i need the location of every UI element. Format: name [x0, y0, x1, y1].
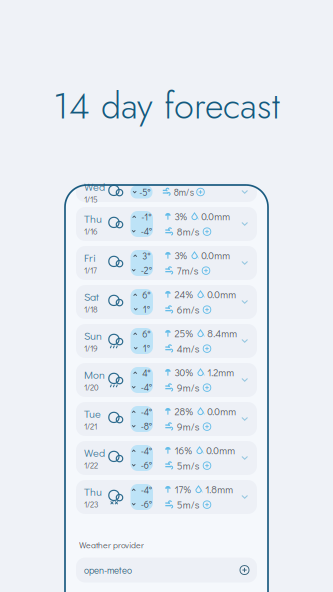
staticText: -4° — [141, 381, 152, 393]
button[interactable]: Thu — [76, 207, 257, 241]
staticText: 0.0mm — [201, 210, 230, 223]
staticText: 16% — [174, 444, 191, 457]
staticText: 4° — [142, 367, 150, 379]
staticText: Weather provider — [79, 539, 144, 550]
staticText: -4° — [141, 406, 152, 418]
staticText: -6° — [141, 498, 152, 510]
staticText: 0.0mm — [201, 249, 230, 262]
button[interactable]: Thu — [76, 480, 257, 514]
staticText: open-meteo — [84, 564, 132, 576]
staticText: 1° — [143, 303, 150, 315]
staticText: 17% — [174, 483, 190, 496]
staticText: 1/20 — [84, 382, 99, 392]
button[interactable]: Fri — [76, 246, 257, 280]
staticText: 4m/s — [177, 342, 200, 355]
staticText: Thu — [84, 484, 102, 499]
button[interactable]: Tue — [76, 402, 257, 436]
staticText: Sun — [84, 328, 102, 343]
staticText: Wed — [84, 179, 105, 194]
staticText: 24% — [174, 288, 192, 301]
button[interactable]: Sun — [76, 324, 257, 358]
staticText: 3% — [174, 210, 186, 223]
button[interactable]: Sat — [76, 285, 257, 319]
staticText: 8m/s — [174, 186, 194, 198]
staticText: 14 day forecast — [53, 80, 280, 132]
staticText: 1/19 — [84, 343, 98, 353]
staticText: 1/22 — [84, 460, 98, 470]
staticText: 8.4mm — [207, 327, 237, 340]
staticText: 1/17 — [84, 265, 97, 275]
staticText: 5m/s — [177, 459, 200, 472]
staticText: 0.0mm — [207, 288, 236, 301]
button[interactable]: Wed — [76, 182, 257, 202]
staticText: -4° — [141, 445, 152, 457]
staticText: -8° — [141, 420, 152, 432]
staticText: -6° — [141, 459, 152, 471]
staticText: 5m/s — [177, 498, 200, 511]
button[interactable]: Mon — [76, 363, 257, 397]
staticText: 6° — [142, 289, 150, 301]
staticText: 7m/s — [177, 264, 199, 277]
staticText: Mon — [84, 367, 105, 382]
staticText: 6° — [142, 328, 150, 340]
staticText: -4° — [141, 484, 152, 496]
staticText: Wed — [84, 445, 105, 460]
staticText: 3% — [174, 249, 186, 262]
staticText: 3° — [142, 250, 150, 262]
staticText: 1.2mm — [207, 366, 234, 379]
staticText: 1/21 — [84, 421, 97, 431]
staticText: 25% — [174, 327, 192, 340]
staticText: 28% — [174, 405, 192, 418]
staticText: Fri — [84, 250, 96, 265]
staticText: 0.0mm — [207, 405, 236, 418]
staticText: -4° — [141, 225, 152, 237]
staticText: Tue — [84, 406, 101, 421]
button[interactable]: open-meteo — [76, 557, 257, 582]
staticText: -5° — [139, 186, 150, 198]
staticText: 1/15 — [84, 194, 98, 204]
staticText: Thu — [84, 211, 102, 226]
staticText: Sat — [84, 289, 99, 304]
staticText: 6m/s — [177, 303, 200, 316]
staticText: 9m/s — [177, 381, 200, 394]
staticText: 9m/s — [177, 420, 200, 433]
staticText: 8m/s — [177, 225, 200, 238]
button[interactable]: Wed — [76, 441, 257, 475]
staticText: -2° — [141, 264, 152, 276]
staticText: -1° — [141, 211, 151, 223]
staticText: 30% — [174, 366, 192, 379]
staticText: 1/16 — [84, 226, 98, 236]
staticText: 1° — [143, 342, 150, 354]
staticText: 1/18 — [84, 304, 98, 314]
staticText: 1/23 — [84, 499, 98, 509]
staticText: 1.8mm — [205, 483, 233, 496]
staticText: 0.0mm — [206, 444, 235, 457]
